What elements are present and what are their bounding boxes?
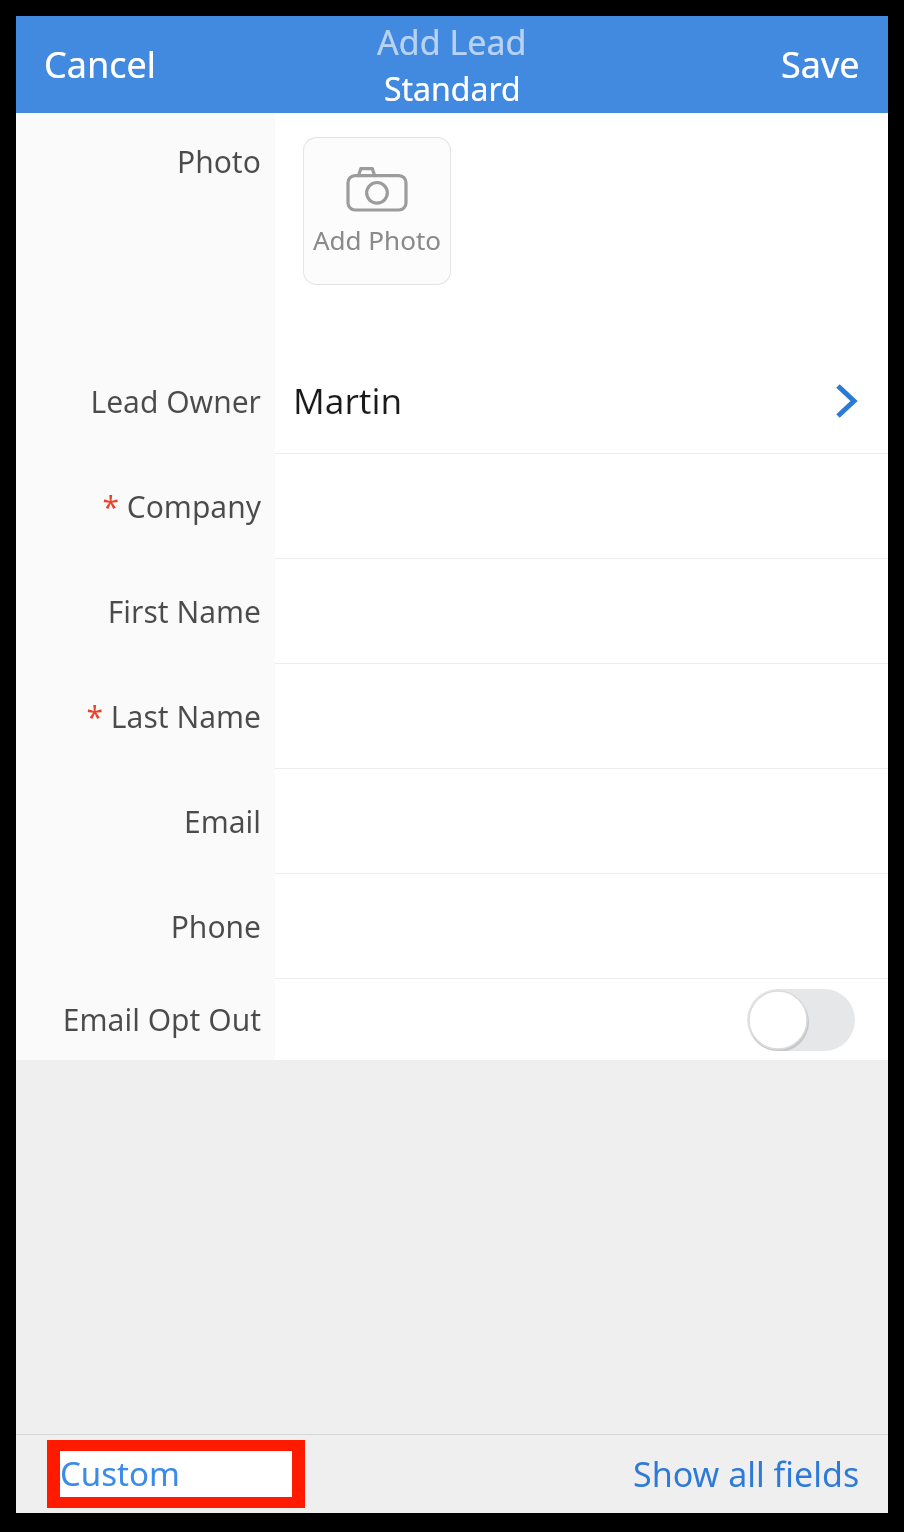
button[interactable]: * Company bbox=[16, 454, 888, 558]
button[interactable]: Email bbox=[16, 769, 888, 873]
staticText: Save bbox=[781, 40, 860, 89]
staticText: Phone bbox=[170, 906, 261, 947]
button[interactable]: Lead Owner bbox=[16, 349, 888, 453]
staticText: Cancel bbox=[44, 40, 157, 89]
staticText: Add Photo bbox=[313, 222, 441, 257]
button[interactable]: Email Opt Out toggle bbox=[747, 989, 855, 1051]
button[interactable]: Phone bbox=[16, 874, 888, 978]
button[interactable]: Custom button bbox=[47, 1440, 305, 1508]
button[interactable]: Save bbox=[753, 24, 888, 105]
staticText: * Company bbox=[102, 486, 261, 527]
button[interactable]: First Name bbox=[16, 559, 888, 663]
staticText: Standard bbox=[384, 67, 521, 111]
staticText: Custom button bbox=[60, 1451, 292, 1497]
staticText: Martin bbox=[293, 377, 403, 425]
button[interactable]: Cancel bbox=[16, 24, 185, 105]
button[interactable]: * Last Name bbox=[16, 664, 888, 768]
staticText: * Last Name bbox=[86, 696, 261, 737]
button[interactable]: Show all fields bbox=[605, 1439, 888, 1509]
button[interactable]: Add Photo bbox=[303, 137, 451, 285]
staticText: Show all fields bbox=[633, 1451, 860, 1497]
staticText: Photo bbox=[177, 141, 261, 182]
staticText: Lead Owner bbox=[90, 381, 261, 422]
staticText: Add Lead bbox=[377, 19, 527, 65]
staticText: First Name bbox=[107, 591, 261, 632]
button[interactable]: Email Opt Out bbox=[16, 979, 888, 1060]
staticText: Email Opt Out bbox=[62, 999, 261, 1040]
staticText: Email bbox=[183, 801, 261, 842]
